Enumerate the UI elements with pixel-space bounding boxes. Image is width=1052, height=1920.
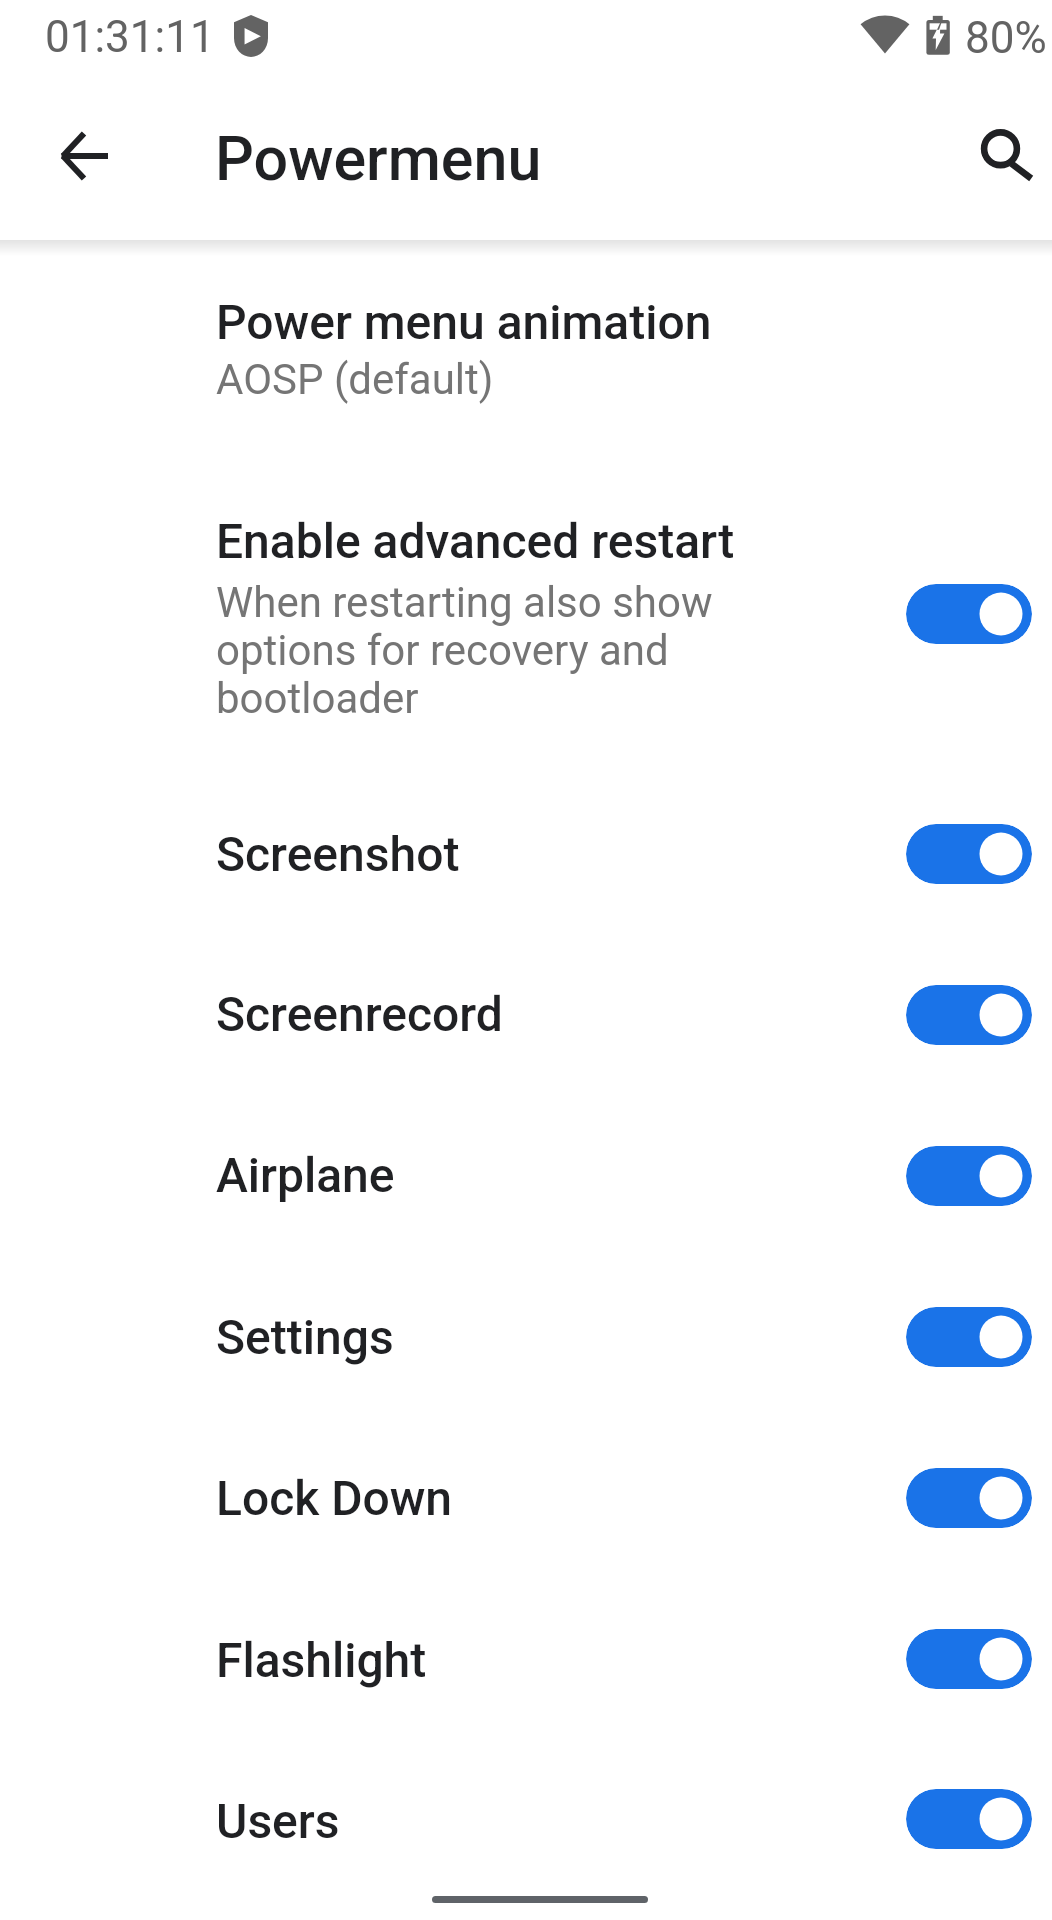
staticText: When restarting also show options for re… <box>216 578 728 724</box>
button[interactable]: Power menu animation <box>0 250 1052 458</box>
staticText: Settings <box>216 1309 394 1365</box>
staticText: 80% <box>965 12 1047 64</box>
button[interactable]: Screenshot <box>0 774 1052 935</box>
button[interactable]: Users <box>906 1789 1032 1849</box>
button[interactable]: Search <box>952 108 1048 204</box>
staticText: Lock Down <box>216 1470 453 1526</box>
staticText: Enable advanced restart <box>216 513 735 569</box>
staticText: 01:31:11 <box>45 11 215 63</box>
button[interactable]: Enable advanced restart <box>0 458 1052 772</box>
staticText: Airplane <box>216 1147 395 1203</box>
staticText: Powermenu <box>215 123 542 194</box>
button[interactable]: Airplane <box>906 1146 1032 1206</box>
staticText: Screenshot <box>216 826 460 882</box>
button[interactable]: Settings <box>0 1256 1052 1417</box>
button[interactable]: Lock Down <box>906 1468 1032 1528</box>
button[interactable]: Enable advanced restart <box>906 584 1032 644</box>
staticText: Screenrecord <box>216 986 503 1042</box>
button[interactable]: Lock Down <box>0 1417 1052 1578</box>
button[interactable]: Screenrecord <box>906 985 1032 1045</box>
button[interactable]: Flashlight <box>0 1578 1052 1739</box>
button[interactable]: Users <box>0 1739 1052 1900</box>
staticText: Power menu animation <box>216 294 712 350</box>
button[interactable]: Navigate up <box>36 108 132 204</box>
button[interactable]: Settings <box>906 1307 1032 1367</box>
button[interactable]: Airplane <box>0 1095 1052 1256</box>
staticText: Flashlight <box>216 1632 427 1688</box>
button[interactable]: Screenshot <box>906 824 1032 884</box>
button[interactable]: Flashlight <box>906 1629 1032 1689</box>
staticText: Users <box>216 1793 340 1849</box>
staticText: AOSP (default) <box>216 355 494 404</box>
button[interactable]: Screenrecord <box>0 934 1052 1095</box>
